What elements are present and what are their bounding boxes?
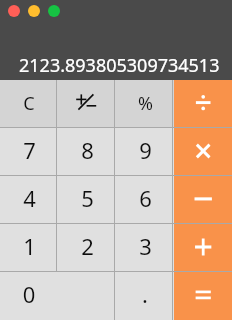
staticText: % (138, 91, 153, 116)
staticText: 6 (139, 183, 152, 213)
button[interactable]: 9 (116, 128, 174, 176)
button[interactable]: Equals (174, 272, 232, 320)
button[interactable]: Divide (174, 80, 232, 128)
button[interactable]: . (116, 272, 174, 320)
button[interactable]: % (116, 80, 174, 128)
button[interactable]: 2 (58, 224, 116, 272)
button[interactable]: 4 (0, 176, 58, 224)
button[interactable]: 0 (0, 272, 116, 320)
staticText: 2123.893805309734513 (19, 53, 220, 78)
staticText: 0 (0, 279, 58, 309)
staticText: 5 (81, 183, 94, 213)
staticText: 1 (23, 231, 36, 261)
button[interactable]: Add (174, 224, 232, 272)
button[interactable]: Subtract (174, 176, 232, 224)
staticText: 9 (139, 135, 152, 165)
button[interactable]: 1 (0, 224, 58, 272)
button[interactable]: 8 (58, 128, 116, 176)
staticText: 8 (81, 135, 94, 165)
button[interactable]: Minimize window (28, 5, 40, 17)
button[interactable]: 5 (58, 176, 116, 224)
staticText: 3 (139, 231, 152, 261)
button[interactable]: 7 (0, 128, 58, 176)
button[interactable]: Close window (8, 5, 20, 17)
button[interactable]: Zoom window (48, 5, 60, 17)
button[interactable]: 3 (116, 224, 174, 272)
button[interactable]: Plus minus (58, 80, 116, 128)
staticText: C (23, 91, 35, 116)
staticText: 7 (23, 135, 36, 165)
button[interactable]: C (0, 80, 58, 128)
button[interactable]: 6 (116, 176, 174, 224)
button[interactable]: Multiply (174, 128, 232, 176)
staticText: . (142, 279, 148, 309)
staticText: 2 (81, 231, 94, 261)
staticText: 4 (23, 183, 36, 213)
